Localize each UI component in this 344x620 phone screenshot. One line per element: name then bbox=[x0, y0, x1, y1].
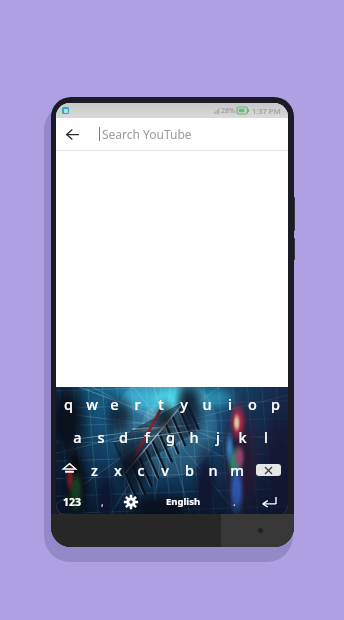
button[interactable]: m bbox=[225, 453, 249, 486]
staticText: k bbox=[238, 427, 247, 447]
button[interactable]: s bbox=[89, 420, 112, 453]
button[interactable]: Back bbox=[56, 118, 88, 150]
button[interactable]: n bbox=[201, 453, 225, 486]
staticText: z bbox=[91, 460, 98, 480]
staticText: e bbox=[110, 394, 119, 414]
button[interactable]: i bbox=[218, 387, 241, 420]
button[interactable]: z bbox=[83, 453, 106, 486]
button[interactable]: Settings bbox=[116, 486, 146, 517]
button[interactable]: e bbox=[103, 387, 126, 420]
button[interactable]: c bbox=[129, 453, 153, 486]
staticText: a bbox=[73, 427, 82, 447]
staticText: 1:37 PM bbox=[252, 106, 281, 116]
button[interactable]: Enter bbox=[248, 486, 288, 517]
button[interactable]: r bbox=[126, 387, 149, 420]
staticText: m bbox=[230, 460, 244, 480]
button[interactable]: b bbox=[177, 453, 201, 486]
button[interactable]: Back bbox=[56, 118, 288, 150]
button[interactable]: 123 bbox=[56, 486, 89, 517]
button[interactable]: x bbox=[106, 453, 129, 486]
staticText: f bbox=[144, 427, 150, 447]
staticText: s bbox=[97, 427, 105, 447]
staticText: t bbox=[158, 394, 164, 414]
staticText: x bbox=[114, 460, 122, 480]
button[interactable]: y bbox=[172, 387, 195, 420]
button[interactable]: d bbox=[112, 420, 135, 453]
button[interactable]: h bbox=[182, 420, 206, 453]
staticText: 28% bbox=[221, 106, 235, 116]
staticText: i bbox=[228, 394, 232, 414]
staticText: d bbox=[119, 427, 128, 447]
button[interactable]: Shift bbox=[56, 453, 83, 486]
button[interactable]: f bbox=[135, 420, 158, 453]
staticText: w bbox=[86, 394, 98, 414]
staticText: g bbox=[166, 427, 175, 447]
button[interactable]: l bbox=[254, 420, 278, 453]
staticText: p bbox=[271, 394, 280, 414]
button[interactable]: t bbox=[149, 387, 172, 420]
staticText: . bbox=[233, 495, 236, 509]
staticText: l bbox=[264, 427, 268, 447]
staticText: u bbox=[202, 394, 212, 414]
button[interactable]: k bbox=[230, 420, 254, 453]
staticText: y bbox=[180, 394, 188, 414]
button[interactable]: w bbox=[80, 387, 103, 420]
button[interactable]: English bbox=[146, 486, 221, 517]
button[interactable]: Backspace bbox=[249, 453, 288, 486]
staticText: h bbox=[189, 427, 199, 447]
staticText: j bbox=[216, 427, 220, 447]
staticText: r bbox=[134, 394, 141, 414]
button[interactable]: u bbox=[195, 387, 218, 420]
staticText: b bbox=[185, 460, 194, 480]
button[interactable]: v bbox=[153, 453, 177, 486]
staticText: , bbox=[101, 495, 104, 509]
button[interactable]: q bbox=[57, 387, 80, 420]
staticText: 123 bbox=[63, 495, 82, 509]
button[interactable]: , bbox=[89, 486, 116, 517]
staticText: o bbox=[248, 394, 257, 414]
button[interactable]: a bbox=[66, 420, 89, 453]
staticText: English bbox=[166, 495, 201, 508]
button[interactable]: . bbox=[221, 486, 248, 517]
staticText: c bbox=[137, 460, 145, 480]
button[interactable]: p bbox=[264, 387, 287, 420]
staticText: q bbox=[64, 394, 73, 414]
button[interactable]: g bbox=[158, 420, 182, 453]
button[interactable]: o bbox=[241, 387, 264, 420]
staticText: n bbox=[208, 460, 218, 480]
staticText: v bbox=[161, 460, 169, 480]
button[interactable]: j bbox=[206, 420, 230, 453]
staticText: Search YouTube bbox=[102, 126, 192, 142]
